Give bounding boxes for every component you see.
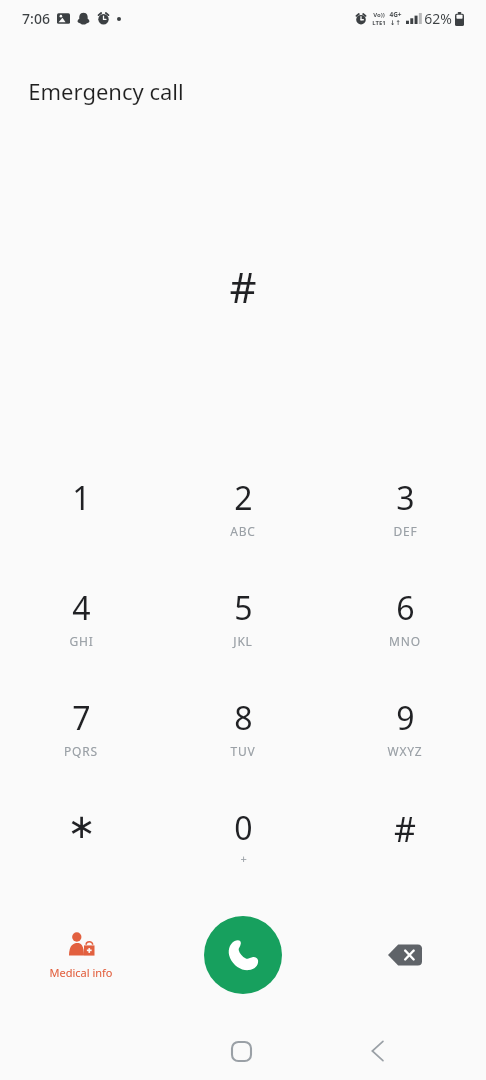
button[interactable]: 7	[0, 682, 162, 792]
button[interactable]: 2	[162, 462, 324, 572]
staticText: 7:06	[22, 9, 50, 28]
staticText: #	[229, 258, 257, 315]
staticText: 5	[234, 586, 253, 630]
staticText: ABC	[230, 523, 256, 539]
staticText: WXYZ	[387, 743, 423, 759]
button[interactable]: 4	[0, 572, 162, 682]
staticText: 8	[234, 696, 253, 740]
staticText: 7	[72, 696, 91, 740]
staticText: +	[240, 851, 248, 866]
button[interactable]: 0	[162, 792, 324, 902]
staticText: 0	[234, 806, 253, 850]
staticText: 3	[396, 476, 415, 520]
staticText: TUV	[230, 743, 256, 759]
button[interactable]: #	[324, 792, 486, 902]
staticText: LTE1	[372, 19, 386, 27]
staticText: GHI	[69, 633, 94, 649]
staticText: MNO	[389, 633, 421, 649]
button[interactable]: 8	[162, 682, 324, 792]
button[interactable]: Backspace	[324, 905, 486, 1005]
staticText: ∗	[67, 806, 96, 846]
button[interactable]: 5	[162, 572, 324, 682]
staticText: Emergency call	[28, 76, 184, 106]
staticText: Medical info	[49, 965, 113, 980]
staticText: PQRS	[64, 743, 98, 759]
staticText: 6	[396, 586, 415, 630]
button[interactable]: 6	[324, 572, 486, 682]
staticText: 4	[72, 586, 91, 630]
button[interactable]: Call	[204, 916, 282, 994]
staticText: JKL	[233, 633, 253, 649]
staticText: 2	[234, 476, 253, 520]
button[interactable]: 9	[324, 682, 486, 792]
staticText: #	[394, 806, 416, 852]
staticText: DEF	[393, 523, 418, 539]
staticText: ↓↑	[390, 19, 401, 27]
staticText: 62%	[424, 9, 452, 28]
staticText: 1	[72, 476, 91, 520]
button[interactable]: Back	[347, 1022, 407, 1080]
button[interactable]: 1	[0, 462, 162, 572]
staticText: 4G+	[389, 10, 402, 19]
staticText: Vo))	[373, 11, 385, 19]
button[interactable]: Medical info	[0, 905, 162, 1005]
button[interactable]: ∗	[0, 792, 162, 902]
staticText: 9	[396, 696, 415, 740]
button[interactable]: Home	[211, 1022, 271, 1080]
button[interactable]: 3	[324, 462, 486, 572]
